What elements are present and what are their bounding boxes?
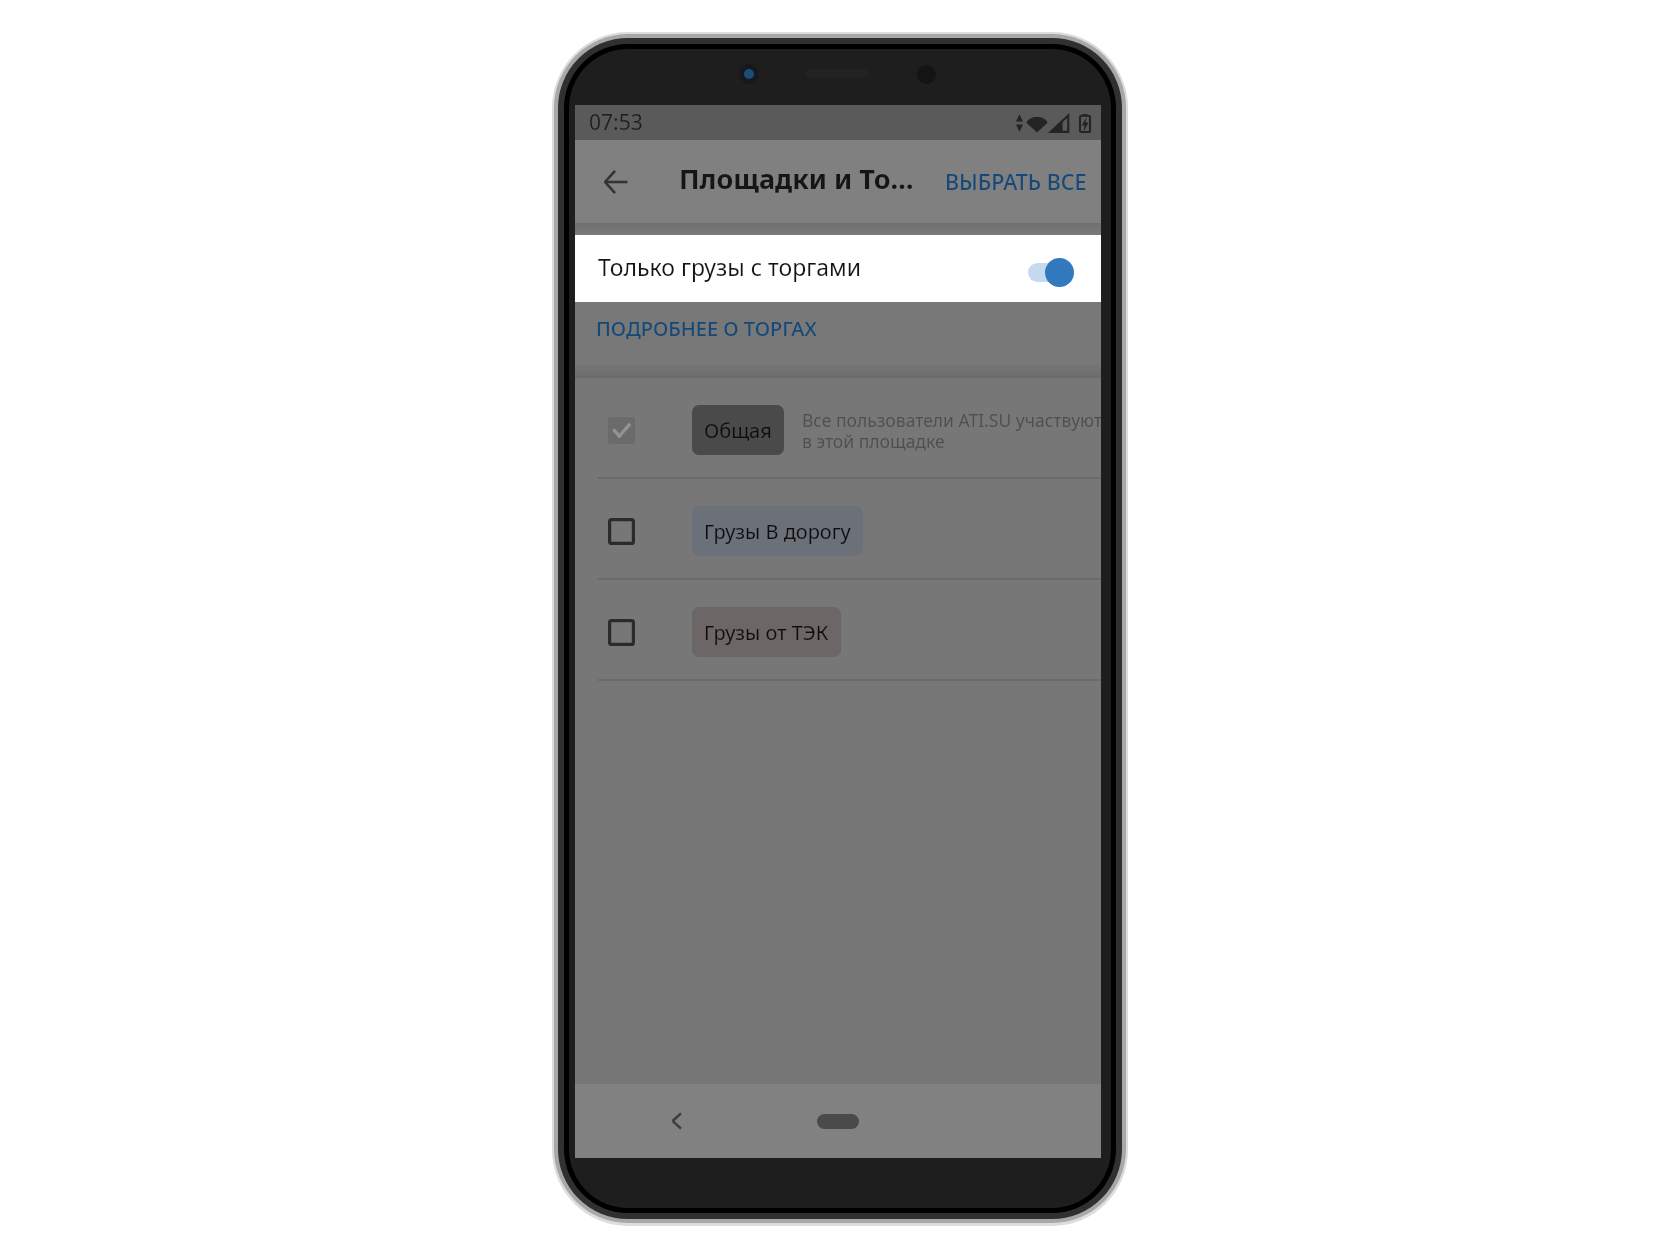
- button[interactable]: ВЫБРАТЬ ВСЕ: [931, 155, 1101, 208]
- staticText: ВЫБРАТЬ ВСЕ: [945, 167, 1087, 196]
- button[interactable]: Back: [592, 158, 640, 206]
- button[interactable]: Back: [655, 1099, 699, 1143]
- button[interactable]: Только грузы с торгами: [575, 235, 1101, 302]
- button[interactable]: Home: [817, 1114, 859, 1129]
- button[interactable]: Общая: [575, 378, 1101, 477]
- staticText: Общая: [704, 417, 772, 444]
- button[interactable]: ПОДРОБНЕЕ О ТОРГАХ: [596, 315, 817, 342]
- staticText: Все пользователи ATI.SU участвуют в этой…: [802, 408, 1101, 453]
- staticText: Только грузы с торгами: [598, 251, 861, 282]
- staticText: 07:53: [589, 108, 643, 137]
- staticText: ПОДРОБНЕЕ О ТОРГАХ: [596, 315, 817, 342]
- button[interactable]: Toggle only auctions: [1027, 255, 1074, 289]
- button[interactable]: Грузы В дорогу: [575, 479, 1101, 578]
- staticText: Грузы В дорогу: [704, 518, 851, 545]
- button[interactable]: Грузы от ТЭК: [575, 580, 1101, 679]
- staticText: Грузы от ТЭК: [704, 619, 829, 646]
- staticText: Площадки и То…: [679, 160, 914, 197]
